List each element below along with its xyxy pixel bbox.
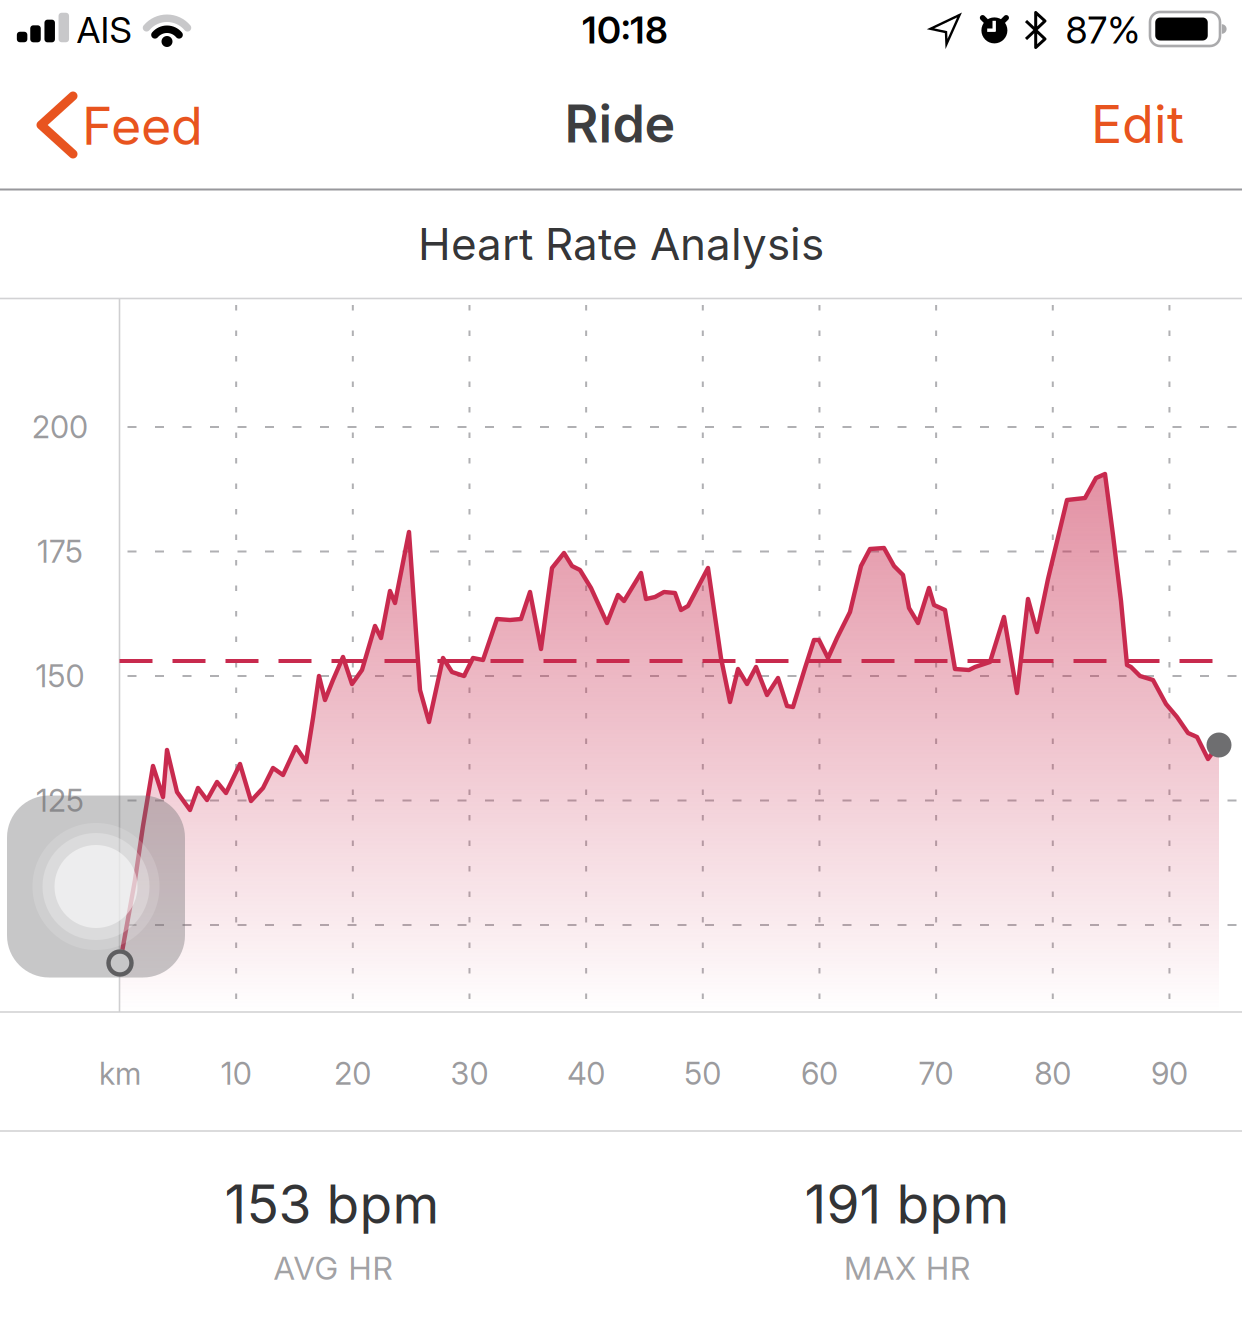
staticText: 153 bpm: [224, 1172, 439, 1235]
staticText: 87%: [1065, 8, 1140, 52]
staticText: MAX HR: [844, 1249, 970, 1287]
staticText: km: [99, 1055, 141, 1092]
staticText: 125: [36, 782, 84, 819]
staticText: AVG HR: [273, 1249, 392, 1287]
staticText: 70: [919, 1055, 954, 1092]
staticText: 40: [567, 1055, 605, 1092]
button[interactable]: AssistiveTouch: [7, 795, 185, 977]
staticText: 150: [35, 658, 84, 694]
staticText: 191 bpm: [804, 1172, 1009, 1235]
staticText: 30: [450, 1055, 488, 1092]
staticText: 80: [1034, 1055, 1071, 1092]
staticText: 10: [221, 1055, 252, 1092]
staticText: 20: [334, 1055, 371, 1092]
staticText: Feed: [82, 95, 203, 156]
staticText: Heart Rate Analysis: [418, 218, 824, 270]
staticText: 60: [801, 1055, 838, 1092]
button[interactable]: Edit: [1077, 86, 1197, 162]
staticText: Ride: [564, 93, 675, 154]
staticText: AIS: [76, 9, 131, 51]
staticText: 10:18: [582, 8, 668, 52]
staticText: Edit: [1091, 93, 1184, 155]
staticText: 175: [37, 533, 83, 570]
staticText: 50: [684, 1055, 721, 1092]
button[interactable]: Back to Feed: [37, 87, 201, 163]
staticText: 200: [32, 409, 88, 445]
staticText: 90: [1151, 1055, 1188, 1092]
